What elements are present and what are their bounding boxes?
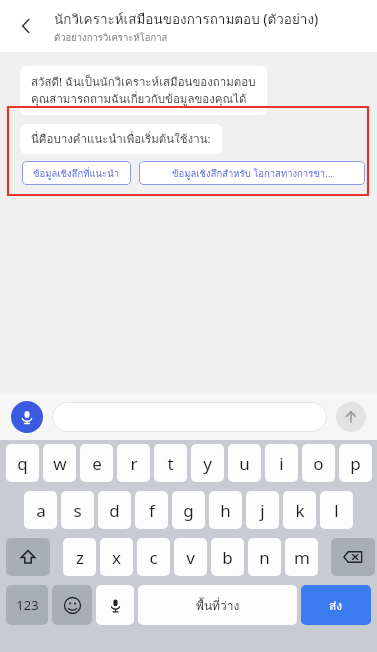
button[interactable]: Back bbox=[6, 6, 46, 46]
button[interactable]: Voice typing bbox=[96, 585, 134, 625]
button[interactable]: e bbox=[80, 444, 113, 482]
button[interactable]: 123 bbox=[6, 585, 48, 625]
button[interactable]: ข้อมูลเชิงลึกสำหรับ โอกาสทางการขา... bbox=[139, 161, 365, 185]
button[interactable]: q bbox=[6, 444, 39, 482]
button[interactable]: f bbox=[135, 491, 168, 529]
button[interactable]: o bbox=[302, 444, 335, 482]
button[interactable]: k bbox=[283, 491, 316, 529]
button[interactable]: h bbox=[209, 491, 242, 529]
staticText: z bbox=[76, 546, 84, 569]
staticText: s bbox=[73, 499, 82, 522]
button[interactable]: a bbox=[24, 491, 57, 529]
button[interactable]: c bbox=[137, 538, 170, 576]
staticText: ข้อมูลเชิงลึกที่แนะนำ bbox=[33, 166, 120, 181]
button[interactable]: Voice input bbox=[11, 401, 43, 433]
button[interactable]: x bbox=[100, 538, 133, 576]
button[interactable]: u bbox=[228, 444, 261, 482]
button[interactable]: ส่ง bbox=[301, 585, 371, 625]
staticText: i bbox=[279, 452, 284, 475]
staticText: l bbox=[334, 499, 339, 522]
staticText: พื้นที่ว่าง bbox=[196, 596, 240, 615]
staticText: u bbox=[239, 452, 250, 475]
staticText: p bbox=[350, 452, 361, 475]
staticText: นักวิเคราะห์เสมือนของการถามตอบ (ตัวอย่าง… bbox=[54, 8, 319, 29]
staticText: f bbox=[149, 499, 155, 522]
button[interactable]: r bbox=[117, 444, 150, 482]
staticText: นี่คือบางคำแนะนำเพื่อเริ่มต้นใช้งาน: bbox=[31, 130, 211, 148]
button[interactable]: สวัสดี! ฉันเป็นนักวิเคราะห์เสมือนของถามต… bbox=[20, 66, 267, 115]
button[interactable]: i bbox=[265, 444, 298, 482]
button[interactable]: Emoji bbox=[52, 585, 92, 625]
button[interactable]: p bbox=[339, 444, 372, 482]
button[interactable]: t bbox=[154, 444, 187, 482]
staticText: v bbox=[186, 546, 195, 569]
staticText: x bbox=[112, 546, 121, 569]
button[interactable]: ข้อมูลเชิงลึกที่แนะนำ bbox=[22, 161, 131, 185]
button[interactable]: s bbox=[61, 491, 94, 529]
staticText: g bbox=[183, 499, 194, 522]
button[interactable]: นี่คือบางคำแนะนำเพื่อเริ่มต้นใช้งาน: bbox=[20, 124, 222, 154]
staticText: h bbox=[220, 499, 231, 522]
button[interactable]: Backspace bbox=[331, 538, 375, 576]
button[interactable]: w bbox=[43, 444, 76, 482]
staticText: ข้อมูลเชิงลึกสำหรับ โอกาสทางการขา... bbox=[172, 166, 333, 181]
staticText: n bbox=[259, 546, 270, 569]
button[interactable]: พื้นที่ว่าง bbox=[138, 585, 297, 625]
button[interactable]: b bbox=[211, 538, 244, 576]
staticText: t bbox=[167, 452, 174, 475]
button[interactable]: n bbox=[248, 538, 281, 576]
staticText: 123 bbox=[16, 596, 39, 614]
button[interactable]: d bbox=[98, 491, 131, 529]
staticText: o bbox=[313, 452, 324, 475]
staticText: k bbox=[295, 499, 305, 522]
button[interactable]: Shift bbox=[6, 538, 50, 576]
button[interactable]: z bbox=[63, 538, 96, 576]
staticText: m bbox=[294, 546, 310, 569]
staticText: e bbox=[92, 452, 102, 475]
staticText: j bbox=[260, 499, 265, 522]
button[interactable]: g bbox=[172, 491, 205, 529]
button[interactable]: l bbox=[320, 491, 353, 529]
button[interactable]: y bbox=[191, 444, 224, 482]
button[interactable]: v bbox=[174, 538, 207, 576]
staticText: สวัสดี! ฉันเป็นนักวิเคราะห์เสมือนของถามต… bbox=[31, 73, 256, 108]
button[interactable]: j bbox=[246, 491, 279, 529]
staticText: y bbox=[203, 452, 212, 475]
staticText: ส่ง bbox=[329, 596, 343, 615]
button[interactable]: m bbox=[285, 538, 318, 576]
staticText: c bbox=[149, 546, 158, 569]
staticText: q bbox=[17, 452, 28, 475]
staticText: ตัวอย่างการวิเคราะห์โอกาส bbox=[54, 30, 168, 45]
staticText: r bbox=[130, 452, 138, 475]
staticText: b bbox=[222, 546, 233, 569]
button[interactable] bbox=[52, 402, 327, 432]
staticText: w bbox=[53, 452, 67, 475]
staticText: d bbox=[109, 499, 120, 522]
staticText: a bbox=[36, 499, 46, 522]
button[interactable]: Send bbox=[336, 402, 366, 432]
